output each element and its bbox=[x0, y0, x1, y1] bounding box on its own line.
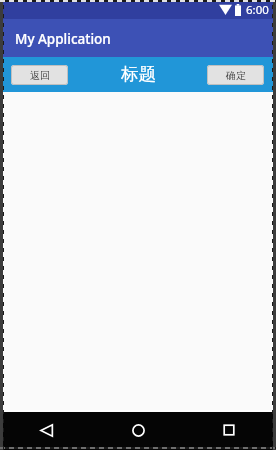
staticText: 确定 bbox=[226, 69, 246, 82]
staticText: 返回 bbox=[30, 69, 50, 82]
button[interactable]: Recents bbox=[199, 411, 259, 449]
button[interactable]: Home bbox=[108, 411, 168, 449]
staticText: 6:00 bbox=[246, 2, 269, 18]
staticText: 标题 bbox=[121, 63, 156, 85]
button[interactable]: Back bbox=[16, 411, 76, 449]
button[interactable]: 返回 bbox=[11, 65, 68, 85]
staticText: My Application bbox=[15, 30, 111, 48]
button[interactable]: 确定 bbox=[207, 65, 264, 85]
